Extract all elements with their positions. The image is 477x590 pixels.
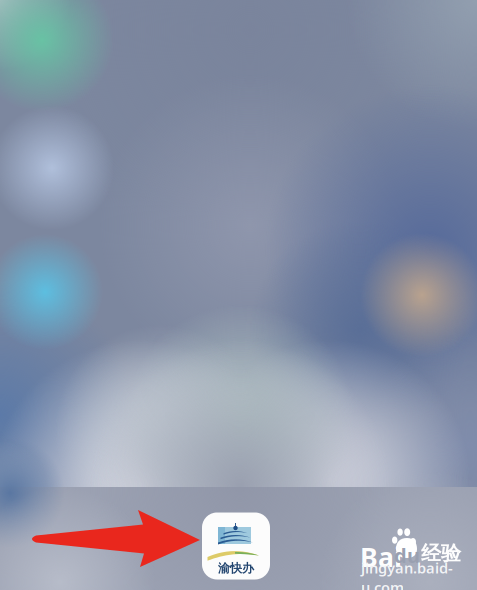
button[interactable]: 渝快办 [202, 512, 270, 579]
staticText: Bai [360, 539, 402, 574]
staticText: du [394, 542, 420, 569]
staticText: 渝快办 [218, 561, 254, 576]
staticText: jingyan.baidu.com [361, 558, 453, 590]
staticText: 经验 [421, 541, 461, 566]
